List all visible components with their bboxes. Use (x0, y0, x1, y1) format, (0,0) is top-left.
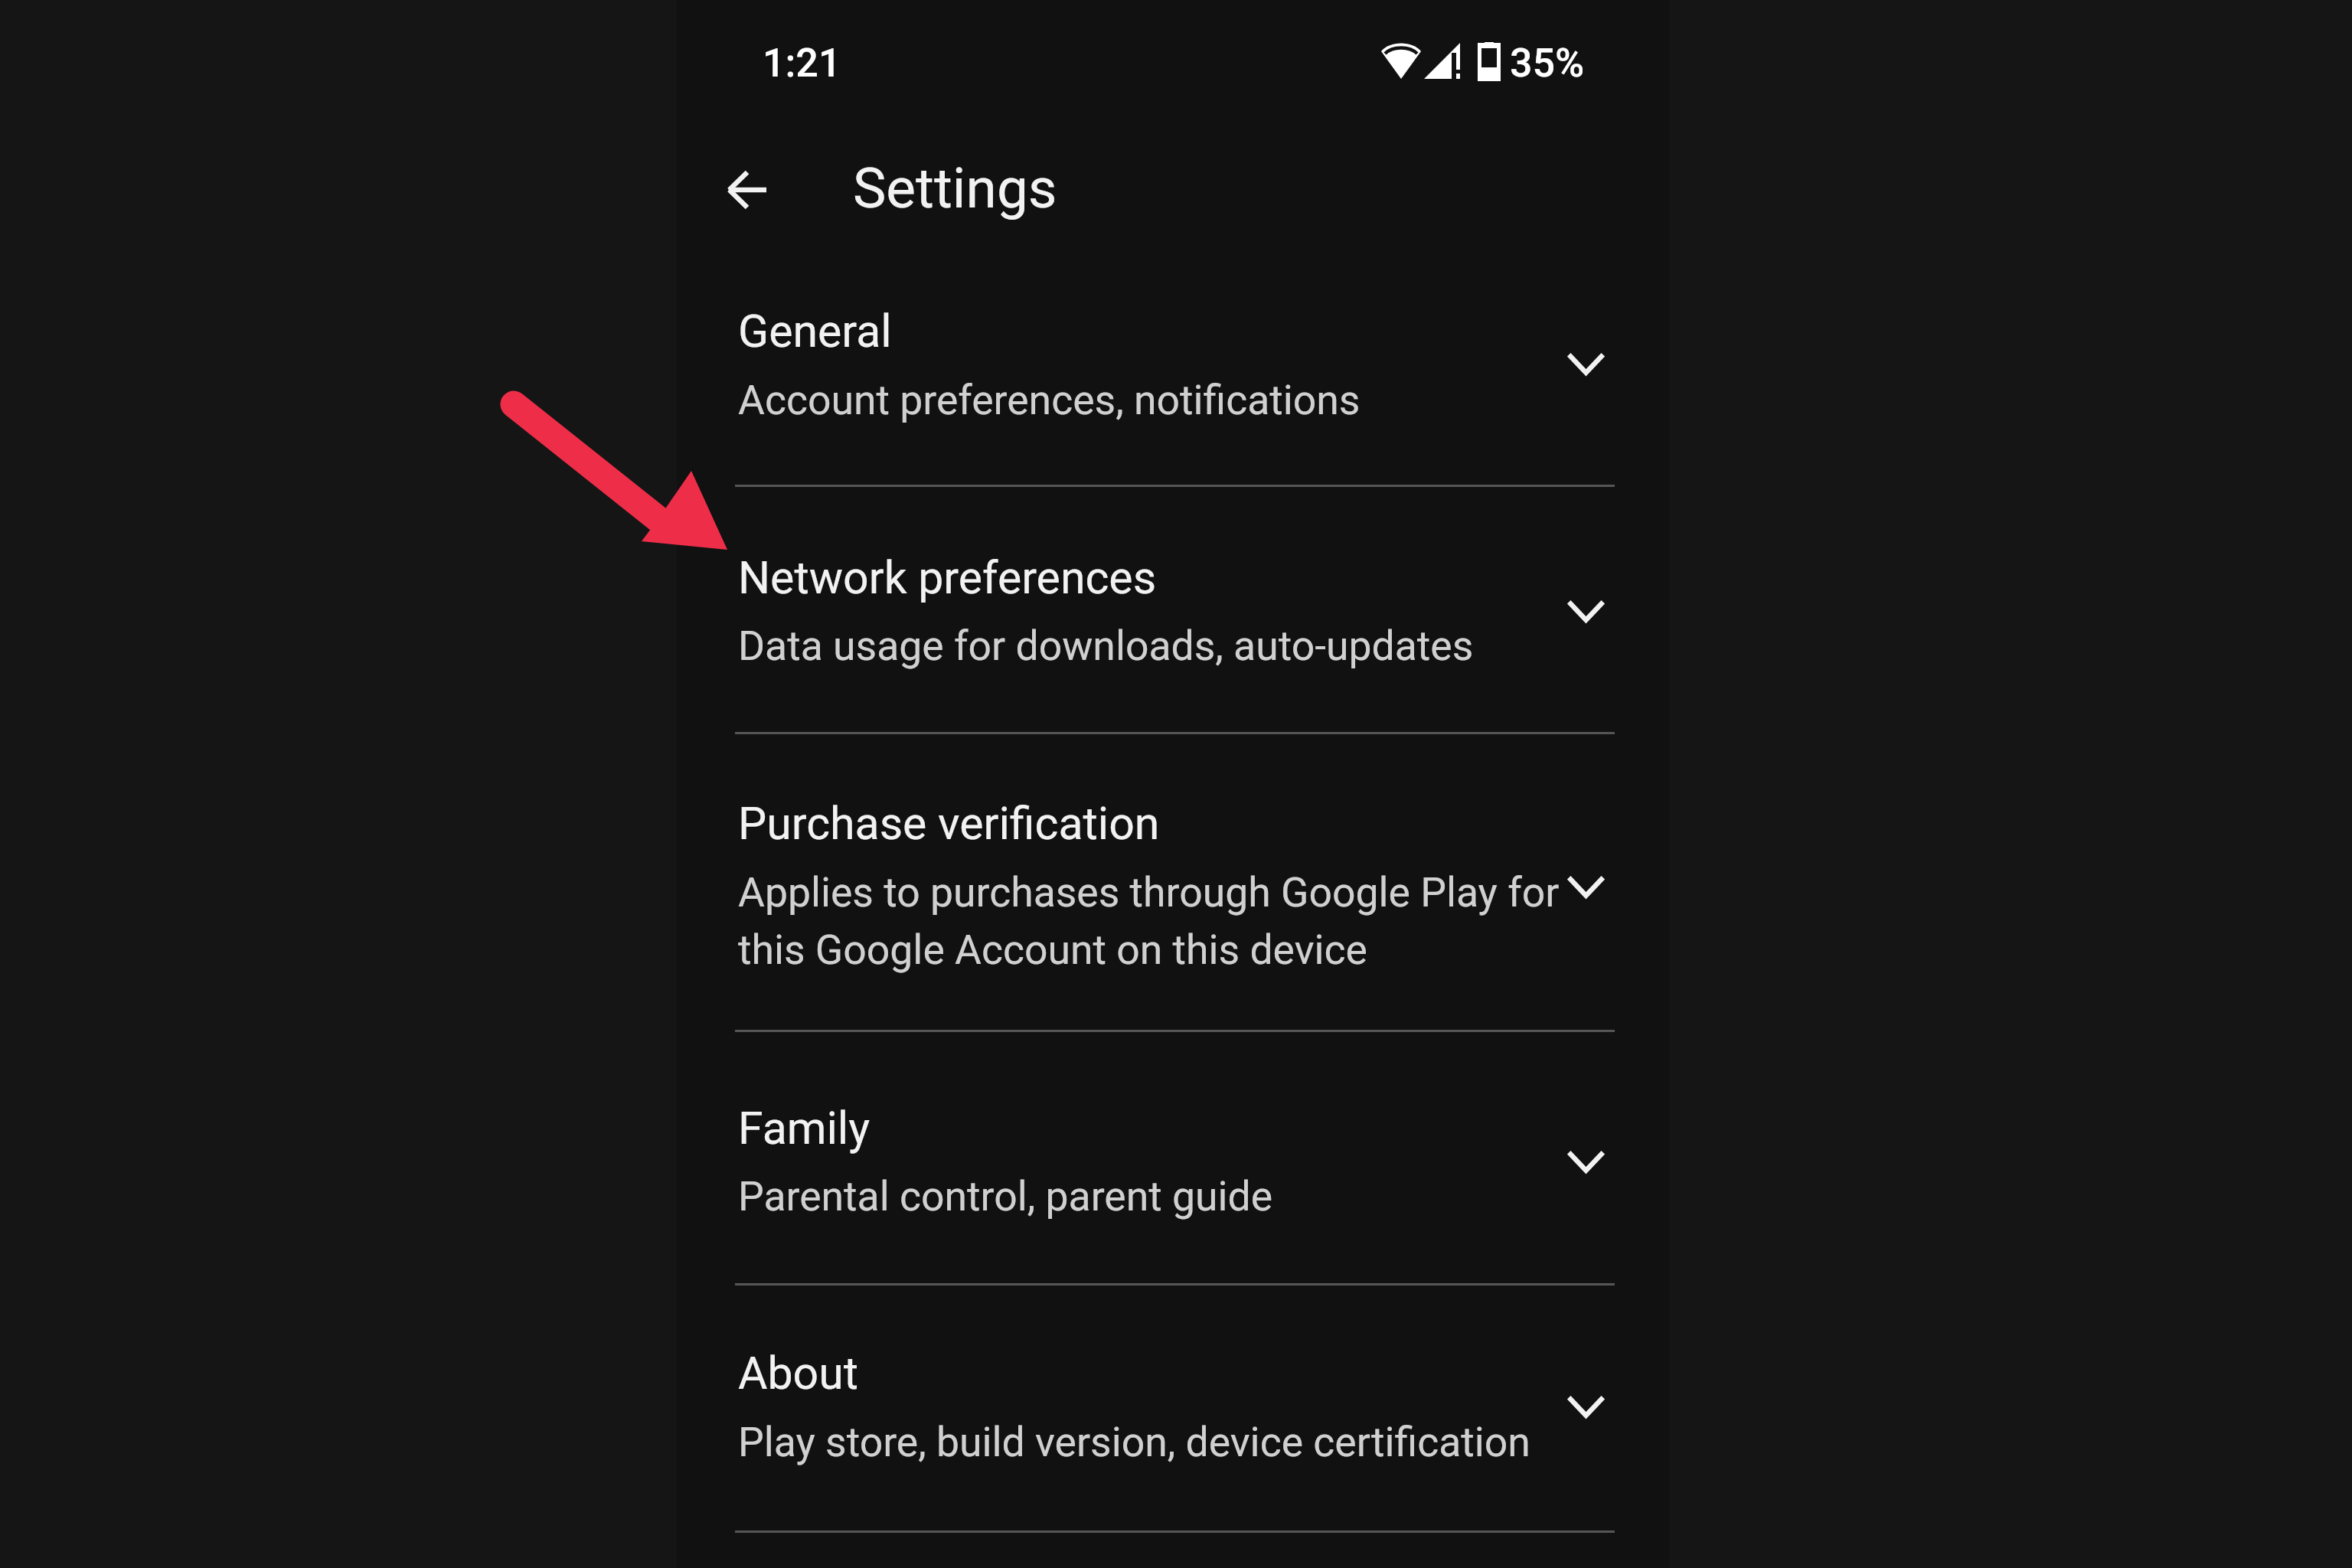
button[interactable]: About (735, 1328, 1615, 1530)
staticText: Family (738, 1102, 1618, 1155)
other: Expand (1566, 1150, 1606, 1173)
staticText: Settings (853, 155, 1236, 221)
staticText: Account preferences, notifications (738, 376, 1580, 424)
button[interactable]: Back (709, 152, 786, 228)
staticText: Play store, build version, device certif… (738, 1418, 1580, 1466)
staticText: 35% (1510, 40, 1663, 87)
staticText: Data usage for downloads, auto-updates (738, 622, 1580, 670)
other: Expand (1566, 1395, 1606, 1418)
button[interactable]: General (735, 285, 1615, 485)
button[interactable]: Purchase verification (735, 778, 1615, 1030)
staticText: Network preferences (738, 551, 1618, 604)
button[interactable]: Family (735, 1083, 1615, 1283)
staticText: Purchase verification (738, 797, 1618, 850)
staticText: About (738, 1347, 1618, 1400)
other: Expand (1566, 599, 1606, 622)
staticText: 1:21 (763, 40, 916, 87)
button[interactable]: Network preferences (735, 531, 1615, 732)
staticText: Applies to purchases through Google Play… (738, 868, 1588, 974)
staticText: Parental control, parent guide (738, 1172, 1580, 1220)
other: Expand (1566, 875, 1606, 898)
other: Expand (1566, 352, 1606, 375)
staticText: General (738, 305, 1618, 358)
